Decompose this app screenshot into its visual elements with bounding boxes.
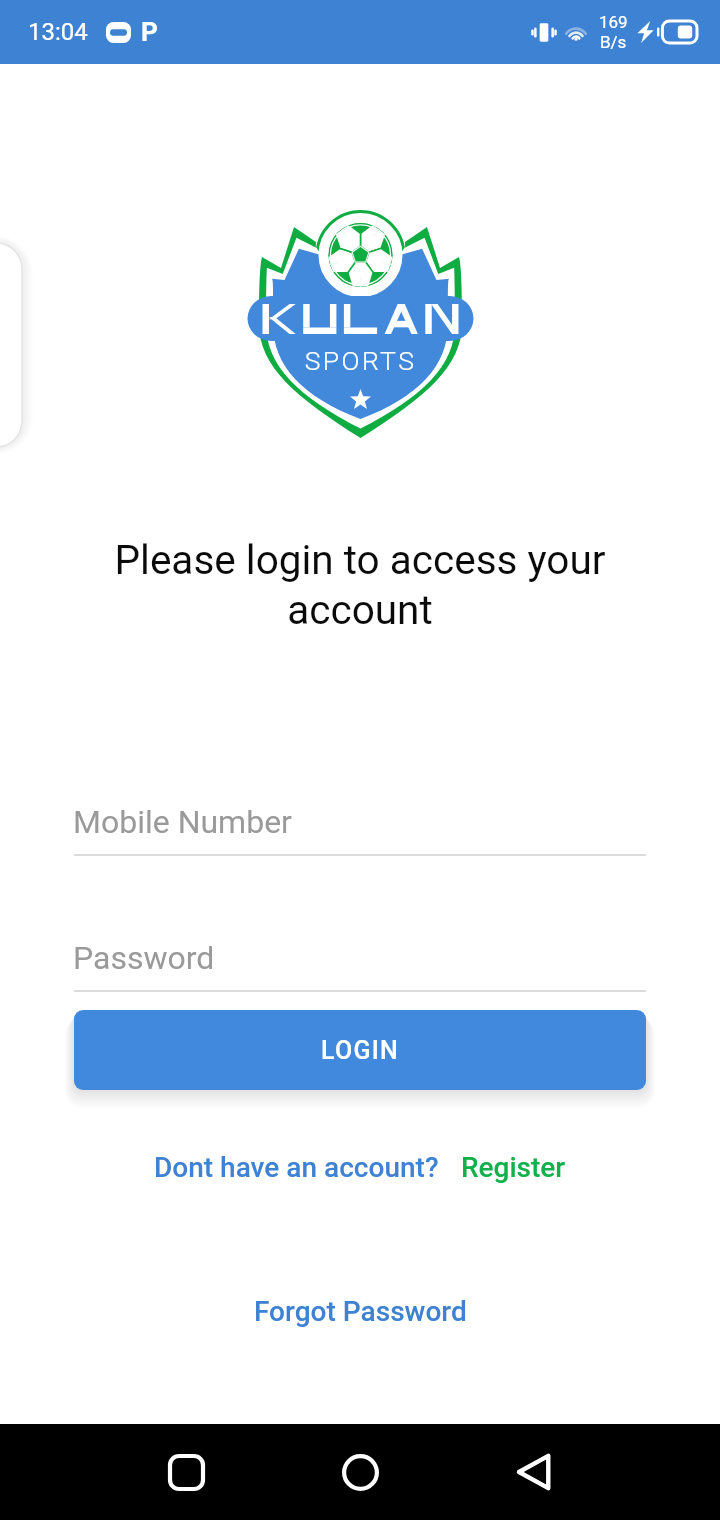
staticText: Please login to access your account — [88, 536, 632, 633]
button[interactable]: Forgot Password — [254, 1295, 467, 1328]
button[interactable]: LOGIN — [74, 1010, 646, 1090]
staticText: B/s — [600, 32, 627, 52]
staticText: P — [141, 17, 158, 47]
staticText: Password — [73, 939, 215, 977]
button[interactable]: Register — [461, 1151, 566, 1184]
button[interactable]: Dont have an account? — [154, 1151, 439, 1184]
staticText: Mobile Number — [73, 803, 292, 841]
button[interactable]: Home — [320, 1424, 400, 1520]
staticText: 13:04 — [28, 18, 88, 46]
button[interactable]: Recent apps — [146, 1424, 226, 1520]
staticText: 169 — [599, 12, 628, 32]
staticText: SPORTS — [246, 345, 475, 376]
button[interactable]: Back — [494, 1424, 574, 1520]
staticText: LOGIN — [321, 1036, 399, 1065]
